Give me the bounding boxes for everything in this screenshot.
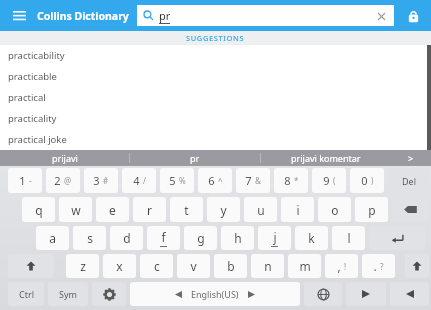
button[interactable]: practicable — [8, 66, 431, 87]
button[interactable]: Cursor left — [346, 282, 386, 306]
staticText: . — [373, 258, 377, 274]
button[interactable]: a — [36, 226, 69, 250]
button[interactable]: prijavi komentar — [261, 150, 391, 166]
button[interactable]: 2 — [46, 168, 80, 193]
button[interactable]: 6 — [198, 168, 232, 193]
staticText: practicable — [8, 70, 57, 83]
button[interactable]: u — [244, 197, 277, 222]
button[interactable]: z — [66, 254, 99, 278]
button[interactable]: f — [147, 226, 180, 250]
button[interactable]: y — [207, 197, 240, 222]
button[interactable]: h — [221, 226, 254, 250]
button[interactable]: d — [110, 226, 143, 250]
button[interactable]: Cursor right — [390, 282, 429, 306]
button[interactable]: Shift — [405, 254, 429, 278]
staticText: b — [227, 258, 235, 274]
button[interactable]: t — [170, 197, 203, 222]
staticText: w — [71, 202, 81, 218]
staticText: Ctrl — [19, 288, 34, 300]
button[interactable]: Clear — [374, 9, 388, 23]
button[interactable]: w — [59, 197, 92, 222]
staticText: f — [161, 229, 166, 245]
staticText: & — [255, 175, 261, 186]
button[interactable]: Shift — [8, 254, 54, 278]
staticText: 3 — [93, 173, 100, 188]
staticText: m — [299, 258, 311, 274]
button[interactable]: pr — [130, 150, 260, 166]
button[interactable]: Del — [388, 168, 429, 193]
staticText: SUGGESTIONS — [186, 33, 245, 43]
staticText: English(US) — [191, 288, 239, 300]
button[interactable]: practical joke — [8, 129, 431, 150]
button[interactable]: practicability — [8, 45, 431, 66]
staticText: 1 — [19, 173, 26, 188]
button[interactable]: s — [73, 226, 106, 250]
button[interactable]: c — [140, 254, 173, 278]
button[interactable]: l — [332, 226, 365, 250]
button[interactable]: g — [184, 226, 217, 250]
staticText: ( — [333, 175, 336, 186]
staticText: l — [347, 230, 351, 246]
button[interactable]: e — [96, 197, 129, 222]
button[interactable]: 4 — [122, 168, 156, 193]
button[interactable]: q — [22, 197, 55, 222]
staticText: 0 — [361, 173, 368, 188]
staticText: ) — [371, 175, 374, 186]
staticText: > — [408, 152, 414, 164]
button[interactable]: Change language — [304, 282, 342, 306]
button[interactable]: Menu — [8, 5, 30, 27]
button[interactable]: m — [288, 254, 321, 278]
button[interactable]: Locked — [403, 6, 423, 26]
button[interactable]: v — [177, 254, 210, 278]
staticText: practicality — [8, 112, 57, 125]
button[interactable]: 9 — [312, 168, 346, 193]
staticText: @ — [64, 175, 72, 186]
staticText: Sym — [59, 288, 77, 300]
button[interactable]: p — [355, 197, 388, 222]
button[interactable]: 7 — [236, 168, 270, 193]
staticText: prijavi komentar — [291, 152, 361, 164]
button[interactable]: 5 — [160, 168, 194, 193]
button[interactable]: 0 — [350, 168, 384, 193]
staticText: a — [49, 230, 56, 246]
staticText: practical joke — [8, 133, 67, 146]
button[interactable]: n — [251, 254, 284, 278]
staticText: i — [296, 202, 300, 218]
button[interactable]: pr — [137, 5, 394, 26]
button[interactable]: o — [318, 197, 351, 222]
button[interactable]: Enter — [369, 226, 425, 250]
button[interactable]: , — [325, 254, 358, 278]
staticText: z — [80, 258, 86, 274]
button[interactable]: 1 — [8, 168, 42, 193]
staticText: ^ — [218, 175, 223, 186]
button[interactable]: Backspace — [392, 197, 429, 222]
button[interactable]: More suggestions — [391, 150, 431, 166]
button[interactable]: prijavi — [0, 150, 129, 166]
button[interactable]: Settings — [92, 282, 126, 306]
button[interactable]: i — [281, 197, 314, 222]
button[interactable]: b — [214, 254, 247, 278]
button[interactable]: . — [362, 254, 395, 278]
button[interactable]: 3 — [84, 168, 118, 193]
button[interactable]: k — [295, 226, 328, 250]
button[interactable]: practical — [8, 87, 431, 108]
staticText: pr — [159, 8, 171, 23]
staticText: ! — [344, 261, 347, 272]
button[interactable]: Sym — [48, 282, 88, 306]
button[interactable]: x — [103, 254, 136, 278]
staticText: , — [337, 258, 341, 274]
staticText: n — [264, 258, 272, 274]
staticText: ? — [380, 261, 384, 272]
staticText: j — [273, 229, 277, 245]
button[interactable]: 8 — [274, 168, 308, 193]
button[interactable]: practicality — [8, 108, 431, 129]
staticText: practicability — [8, 49, 65, 62]
staticText: t — [184, 202, 189, 218]
staticText: Collins Dictionary — [37, 9, 129, 23]
button[interactable]: Ctrl — [8, 282, 44, 306]
staticText: practical — [8, 91, 46, 104]
staticText: d — [123, 230, 131, 246]
button[interactable]: English(US) — [130, 282, 300, 306]
button[interactable]: r — [133, 197, 166, 222]
button[interactable]: j — [258, 226, 291, 250]
